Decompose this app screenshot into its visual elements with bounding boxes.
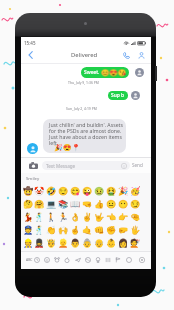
staticText: 👨 — [70, 238, 81, 248]
button[interactable]: 🤏 — [129, 210, 141, 223]
staticText: 🖐 — [130, 225, 141, 235]
button[interactable]: Emoji category 8 — [103, 253, 113, 266]
staticText: 👷 — [23, 238, 34, 248]
button[interactable]: 👵 — [81, 236, 93, 249]
button[interactable]: 👮 — [22, 223, 34, 236]
button[interactable]: 😌 — [57, 184, 69, 197]
button[interactable]: 👌 — [69, 210, 81, 223]
button[interactable]: 👴 — [93, 236, 105, 249]
button[interactable]: 💃 — [22, 210, 34, 223]
button[interactable]: 🤮 — [105, 184, 117, 197]
button[interactable]: 🚶 — [45, 210, 57, 223]
staticText: Just chillin' and buildin'. Assets for t… — [49, 121, 123, 147]
staticText: 👮 — [23, 225, 34, 235]
button[interactable]: 🤞 — [69, 223, 81, 236]
button[interactable]: 😜 — [81, 184, 93, 197]
button[interactable]: 😶 — [117, 197, 129, 210]
button[interactable]: 🖐 — [129, 223, 141, 236]
button[interactable]: 💂 — [33, 236, 45, 249]
button[interactable]: 🤠 — [22, 184, 34, 197]
staticText: 🙌 — [58, 225, 69, 235]
button[interactable]: 🤣 — [45, 184, 57, 197]
button[interactable]: 👨 — [69, 236, 81, 249]
staticText: 📚 — [58, 199, 69, 209]
staticText: 👏 — [46, 225, 57, 235]
staticText: 👶 — [106, 238, 117, 248]
button[interactable]: Send — [132, 159, 143, 171]
button[interactable]: Text Message — [42, 161, 130, 170]
button[interactable]: 🤜 — [81, 197, 93, 210]
button[interactable]: 🥳 — [129, 184, 141, 197]
staticText: 📖 — [70, 199, 81, 209]
button[interactable]: 🤗 — [33, 197, 45, 210]
button[interactable]: 🙌 — [57, 223, 69, 236]
button[interactable]: Camera — [27, 160, 40, 171]
button[interactable]: 🤡 — [33, 184, 45, 197]
button[interactable]: Emoji category 5 — [73, 253, 83, 266]
button[interactable]: 🕺 — [33, 223, 45, 236]
staticText: 🤣 — [46, 186, 57, 196]
staticText: 15:45 — [24, 40, 36, 46]
staticText: 🤏 — [130, 212, 141, 222]
button[interactable]: Emoji category 4 — [62, 253, 72, 266]
button[interactable]: 👉 — [117, 210, 129, 223]
staticText: 👊 — [94, 225, 105, 235]
staticText: 👍 — [94, 199, 105, 209]
staticText: 🤟 — [94, 212, 105, 222]
button[interactable]: Just chillin' and buildin'. Assets for t… — [43, 119, 126, 153]
button[interactable]: Emoji category 3 — [52, 253, 62, 266]
button[interactable]: ✌️ — [81, 210, 93, 223]
button[interactable]: 🏃 — [57, 210, 69, 223]
button[interactable]: Sup b — [108, 91, 128, 100]
button[interactable]: Avatar — [135, 68, 144, 77]
button[interactable]: 🤛 — [117, 223, 129, 236]
staticText: 😐 — [106, 199, 117, 209]
button[interactable]: 📖 — [69, 197, 81, 210]
button[interactable]: 🤴 — [45, 236, 57, 249]
button[interactable]: 👷 — [22, 236, 34, 249]
staticText: 🤢 — [94, 186, 105, 196]
button[interactable]: 🕺 — [33, 210, 45, 223]
button[interactable]: Back — [23, 48, 37, 62]
staticText: 🤴 — [46, 238, 57, 248]
button[interactable]: Avatar — [131, 91, 140, 100]
button[interactable]: Sweet. — [81, 67, 129, 78]
button[interactable]: 🤟 — [93, 210, 105, 223]
button[interactable]: 😐 — [105, 197, 117, 210]
button[interactable]: Call — [120, 49, 133, 62]
button[interactable]: 💻 — [45, 197, 57, 210]
button[interactable]: 🤢 — [93, 184, 105, 197]
button[interactable]: 🤔 — [22, 197, 34, 210]
button[interactable]: ✊ — [105, 223, 117, 236]
staticText: 💻 — [46, 199, 57, 209]
button[interactable]: Emoji category 2 — [42, 253, 52, 266]
button[interactable]: Contact info — [135, 49, 148, 62]
button[interactable]: Emoji category 9 — [113, 253, 123, 266]
button[interactable]: 🎉 — [117, 184, 129, 197]
button[interactable]: 💇 — [129, 236, 141, 249]
button[interactable]: 👊 — [93, 223, 105, 236]
staticText: 🤮 — [106, 186, 117, 196]
button[interactable]: Backspace — [137, 253, 147, 266]
button[interactable]: Avatar — [27, 143, 38, 154]
staticText: 👴 — [94, 238, 105, 248]
button[interactable]: 👩 — [117, 236, 129, 249]
button[interactable]: ABC — [23, 251, 36, 268]
staticText: ✌️ — [82, 212, 93, 222]
button[interactable]: Emoji category 1 — [32, 253, 42, 266]
button[interactable]: Emoji category 6 — [83, 253, 93, 266]
button[interactable]: 👶 — [105, 236, 117, 249]
button[interactable]: Emoji category 7 — [93, 253, 103, 266]
button[interactable]: 👈 — [105, 210, 117, 223]
button[interactable]: 👱 — [57, 236, 69, 249]
button[interactable]: Emoji category 10 — [124, 253, 134, 266]
staticText: 🥳 — [130, 186, 141, 196]
button[interactable]: 😋 — [69, 184, 81, 197]
staticText: 😏 — [130, 199, 141, 209]
button[interactable]: 👍 — [93, 197, 105, 210]
button[interactable]: 🤙 — [81, 223, 93, 236]
button[interactable]: 👏 — [45, 223, 57, 236]
staticText: 😌 — [58, 186, 69, 196]
button[interactable]: 📚 — [57, 197, 69, 210]
button[interactable]: 😏 — [129, 197, 141, 210]
